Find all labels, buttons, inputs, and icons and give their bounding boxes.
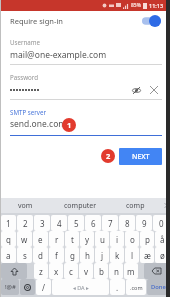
button[interactable]: p: [140, 231, 154, 247]
staticText: p: [145, 234, 150, 245]
staticText: !@#: [5, 283, 16, 291]
staticText: s: [23, 250, 27, 261]
button[interactable]: 6: [85, 215, 101, 231]
button[interactable]: w: [17, 231, 32, 247]
button[interactable]: æ: [140, 247, 154, 263]
button[interactable]: Shift: [1, 263, 27, 279]
staticText: 6: [91, 218, 96, 229]
staticText: a: [6, 250, 11, 261]
staticText: r: [55, 234, 59, 245]
button[interactable]: z: [34, 263, 48, 279]
staticText: Password: [10, 73, 38, 81]
button[interactable]: vom: [0, 198, 50, 213]
staticText: 2: [23, 218, 28, 229]
button[interactable]: More suggestions: [160, 198, 170, 213]
button[interactable]: j: [95, 247, 109, 263]
button[interactable]: h: [80, 247, 94, 263]
staticText: b: [99, 266, 104, 277]
staticText: 3: [40, 218, 45, 229]
button[interactable]: Done: [147, 279, 169, 295]
button[interactable]: g: [65, 247, 79, 263]
button[interactable]: .: [110, 279, 125, 295]
staticText: v: [84, 266, 89, 277]
button[interactable]: computer: [50, 198, 110, 213]
staticText: æ: [144, 250, 151, 261]
staticText: c: [69, 266, 73, 277]
button[interactable]: 0: [153, 215, 169, 231]
button[interactable]: å: [155, 231, 169, 247]
button[interactable]: y: [80, 231, 94, 247]
button[interactable]: ø: [155, 247, 169, 263]
button[interactable]: Space: [52, 279, 109, 295]
button[interactable]: .com: [126, 279, 146, 295]
button[interactable]: Keyboard settings: [20, 279, 35, 295]
button[interactable]: !@#: [1, 279, 19, 295]
staticText: 9: [142, 218, 147, 229]
staticText: j: [101, 250, 104, 261]
staticText: 8: [125, 218, 130, 229]
staticText: d: [38, 250, 43, 261]
staticText: send.one.com: [10, 118, 67, 130]
staticText: g: [70, 250, 75, 261]
staticText: 1: [67, 120, 72, 130]
button[interactable]: f: [49, 247, 64, 263]
button[interactable]: Clear password: [147, 83, 161, 97]
button[interactable]: 7: [102, 215, 118, 231]
staticText: n: [114, 266, 119, 277]
staticText: y: [85, 234, 90, 245]
button[interactable]: Backspace: [144, 263, 169, 279]
staticText: l: [131, 250, 134, 261]
button[interactable]: n: [109, 263, 123, 279]
button[interactable]: 8: [119, 215, 135, 231]
button[interactable]: Require sign-in: [0, 11, 170, 31]
button[interactable]: m: [124, 263, 138, 279]
button[interactable]: 1: [1, 215, 16, 231]
button[interactable]: x: [49, 263, 63, 279]
button[interactable]: e: [33, 231, 48, 247]
button[interactable]: 3: [34, 215, 50, 231]
staticText: 85%: [131, 2, 141, 9]
button[interactable]: t: [65, 231, 79, 247]
button[interactable]: Show password: [129, 83, 143, 97]
button[interactable]: k: [110, 247, 124, 263]
staticText: k: [115, 250, 120, 261]
button[interactable]: c: [64, 263, 78, 279]
staticText: SMTP server: [10, 108, 46, 116]
button[interactable]: Require sign-in toggle: [142, 15, 161, 27]
staticText: 7: [108, 218, 113, 229]
button[interactable]: s: [17, 247, 32, 263]
button[interactable]: b: [94, 263, 108, 279]
button[interactable]: r: [49, 231, 64, 247]
button[interactable]: u: [95, 231, 109, 247]
staticText: /: [42, 282, 45, 293]
button[interactable]: NEXT: [119, 148, 162, 165]
staticText: i: [116, 234, 119, 245]
staticText: o: [130, 234, 135, 245]
button[interactable]: d: [33, 247, 48, 263]
staticText: m: [127, 266, 135, 277]
staticText: f: [55, 250, 58, 261]
staticText: .: [116, 282, 119, 293]
staticText: 11:13: [149, 2, 164, 9]
button[interactable]: a: [1, 247, 16, 263]
button[interactable]: comp: [110, 198, 160, 213]
staticText: 5: [74, 218, 79, 229]
button[interactable]: 4: [51, 215, 67, 231]
button[interactable]: 9: [136, 215, 152, 231]
button[interactable]: l: [125, 247, 139, 263]
staticText: u: [100, 234, 105, 245]
button[interactable]: v: [79, 263, 93, 279]
button[interactable]: o: [125, 231, 139, 247]
button[interactable]: 2: [17, 215, 33, 231]
staticText: ø: [160, 250, 165, 261]
staticText: .com: [130, 284, 143, 291]
button[interactable]: /: [36, 279, 51, 295]
staticText: ◂ DA ▸: [73, 284, 89, 291]
staticText: comp: [126, 201, 145, 211]
staticText: 0: [159, 218, 164, 229]
staticText: w: [21, 234, 28, 245]
button[interactable]: i: [110, 231, 124, 247]
button[interactable]: q: [1, 231, 16, 247]
staticText: Username: [10, 38, 41, 46]
button[interactable]: 5: [68, 215, 84, 231]
